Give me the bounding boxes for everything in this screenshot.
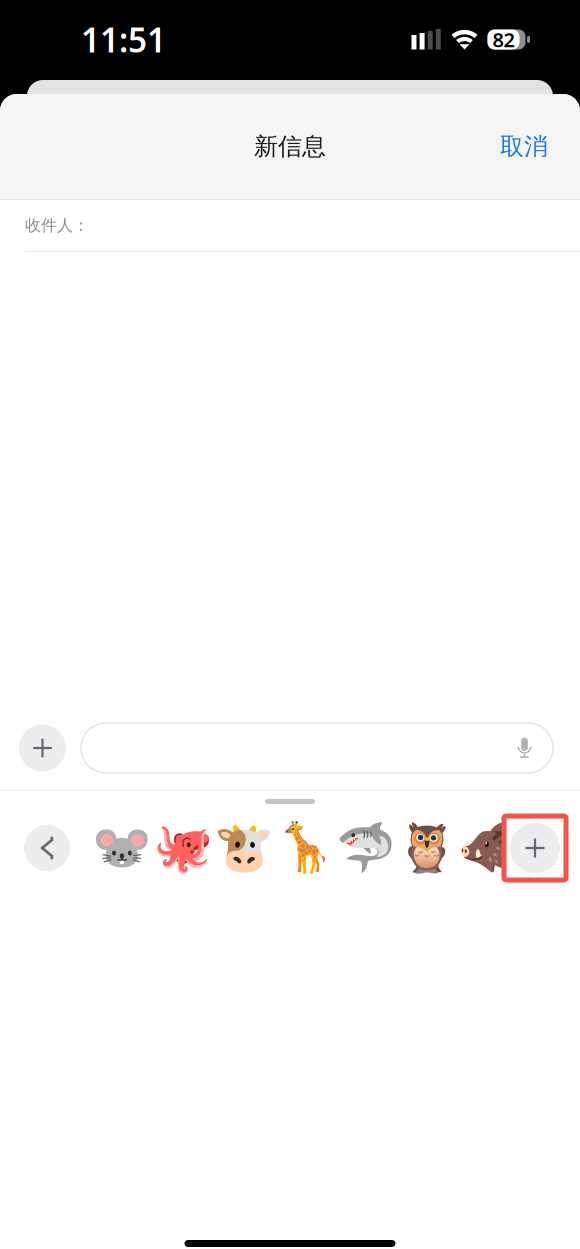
- staticText: 新信息: [254, 132, 326, 161]
- staticText: 🐗: [457, 821, 517, 875]
- button[interactable]: Add memoji: [504, 816, 566, 880]
- staticText: 11:51: [81, 17, 166, 62]
- staticText: 🐙: [152, 821, 212, 875]
- staticText: 🦒: [274, 821, 334, 875]
- staticText: 82: [492, 26, 514, 53]
- staticText: 🦈: [335, 821, 395, 875]
- staticText: 收件人：: [25, 216, 89, 235]
- staticText: 🦉: [396, 821, 456, 875]
- button[interactable]: 取消: [486, 120, 562, 173]
- button[interactable]: Back: [24, 816, 70, 880]
- staticText: 🐭: [91, 821, 151, 875]
- button[interactable]: Add attachment: [19, 724, 66, 771]
- staticText: 🐮: [213, 821, 273, 875]
- staticText: 取消: [500, 132, 548, 161]
